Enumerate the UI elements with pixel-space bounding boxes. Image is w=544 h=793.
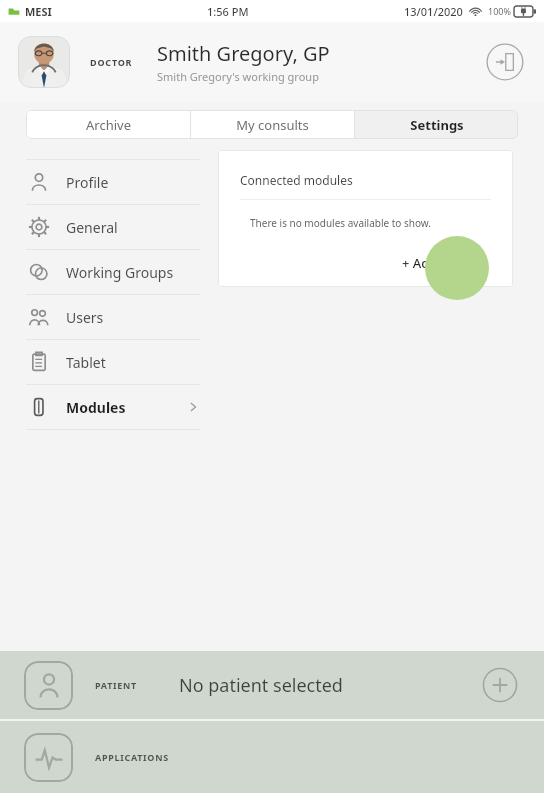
button[interactable]: Working Groups bbox=[26, 250, 200, 294]
staticText: Smith Gregory's working group bbox=[157, 69, 319, 84]
staticText: Smith Gregory, GP bbox=[157, 40, 330, 67]
other: Applications bbox=[24, 733, 73, 782]
button[interactable]: Add patient bbox=[480, 665, 520, 705]
staticText: Tablet bbox=[66, 353, 106, 372]
button[interactable]: General bbox=[26, 205, 200, 249]
staticText: Working Groups bbox=[66, 263, 174, 282]
button[interactable]: Profile bbox=[26, 160, 200, 204]
button[interactable]: My consults bbox=[191, 110, 354, 139]
staticText: PATIENT bbox=[95, 679, 137, 691]
staticText: Profile bbox=[66, 173, 109, 192]
staticText: 100% bbox=[488, 5, 511, 17]
staticText: 1:56 PM bbox=[207, 4, 249, 19]
button[interactable]: + Add module bbox=[400, 252, 491, 274]
staticText: DOCTOR bbox=[90, 56, 133, 68]
button[interactable]: Users bbox=[26, 295, 200, 339]
staticText: No patient selected bbox=[179, 673, 343, 698]
button[interactable]: Settings bbox=[355, 110, 518, 139]
staticText: Modules bbox=[66, 398, 126, 417]
staticText: MESI bbox=[25, 4, 52, 19]
button[interactable]: Applications bbox=[0, 721, 544, 793]
staticText: There is no modules available to show. bbox=[250, 216, 431, 230]
staticText: Connected modules bbox=[240, 172, 353, 188]
staticText: General bbox=[66, 218, 118, 237]
staticText: Settings bbox=[410, 116, 464, 134]
button[interactable]: Profile photo bbox=[18, 36, 70, 88]
button[interactable]: Modules bbox=[26, 385, 200, 429]
staticText: Users bbox=[66, 308, 104, 327]
staticText: APPLICATIONS bbox=[95, 751, 169, 763]
other: Patient bbox=[24, 661, 73, 710]
staticText: 13/01/2020 bbox=[404, 4, 463, 19]
button[interactable]: Tablet bbox=[26, 340, 200, 384]
staticText: My consults bbox=[236, 116, 309, 134]
staticText: Archive bbox=[86, 116, 131, 134]
button[interactable]: Archive bbox=[26, 110, 190, 139]
button[interactable]: Patient bbox=[0, 651, 544, 719]
staticText: + Add module bbox=[402, 254, 489, 272]
button[interactable]: Log out bbox=[484, 41, 526, 83]
